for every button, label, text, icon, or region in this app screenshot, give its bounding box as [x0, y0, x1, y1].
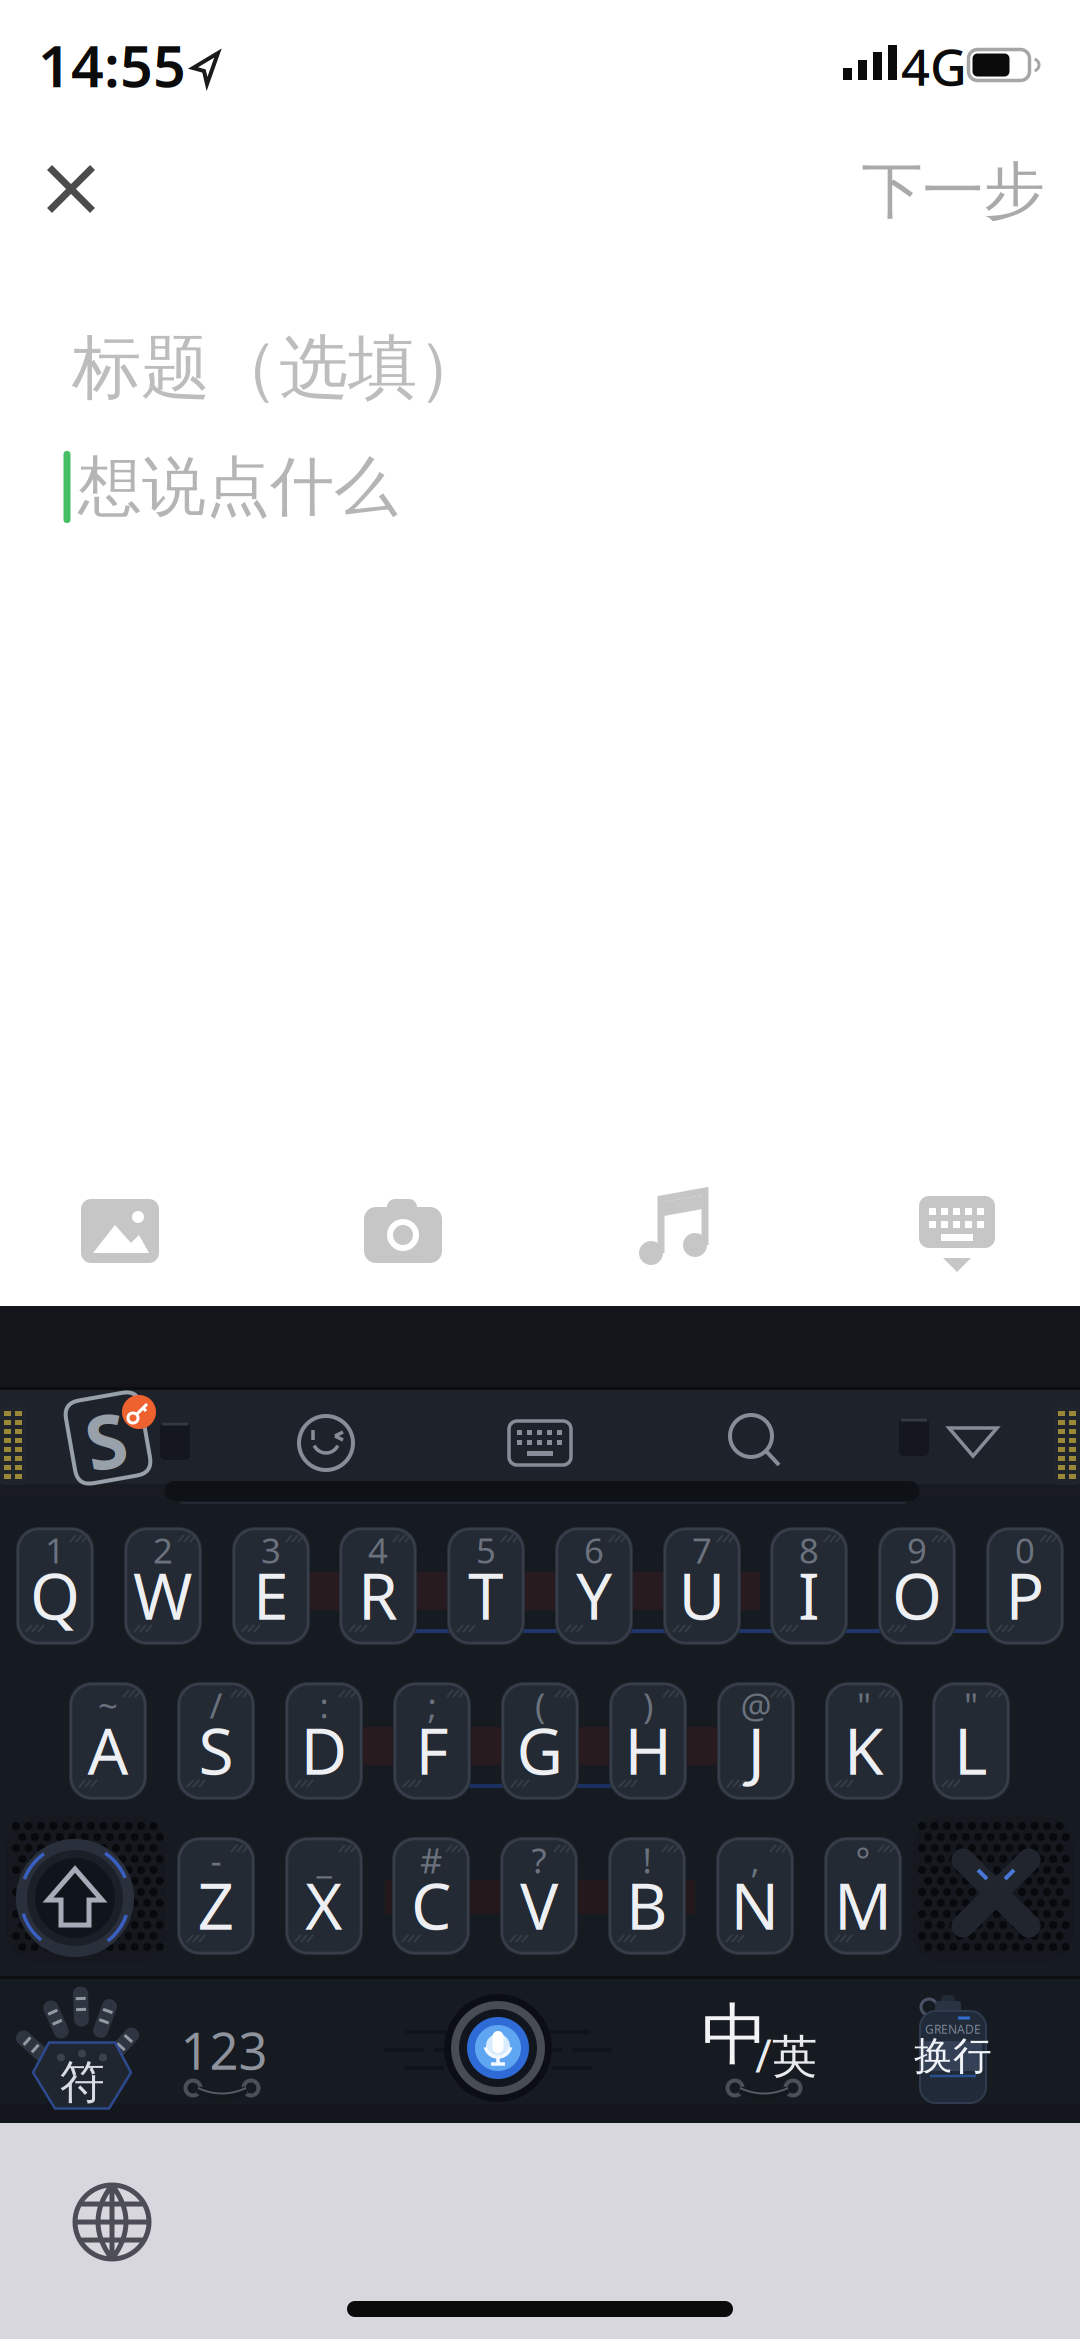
button[interactable]: Symbols [3, 1975, 153, 2120]
button[interactable]: ! [608, 1837, 686, 1955]
staticText: ) [643, 1682, 653, 1728]
staticText: ? [531, 1837, 546, 1883]
staticText: : [319, 1682, 328, 1728]
button[interactable]: " [932, 1682, 1010, 1800]
staticText: ( [535, 1682, 545, 1728]
button[interactable]: Chinese / English [710, 2010, 820, 2074]
button[interactable]: : [285, 1682, 363, 1800]
staticText: Z [197, 1862, 234, 1947]
staticText: B [626, 1862, 668, 1947]
staticText: , [750, 1837, 759, 1883]
button[interactable]: 1 [16, 1527, 94, 1645]
button[interactable]: , [716, 1837, 794, 1955]
button[interactable]: _ [285, 1837, 363, 1955]
button[interactable]: Delete [926, 1823, 1066, 1963]
staticText: 标题（选填） [72, 325, 486, 411]
button[interactable]: Music [637, 1191, 709, 1267]
staticText: 5 [476, 1527, 496, 1573]
button[interactable]: Sogou [65, 1393, 151, 1483]
button[interactable]: # [392, 1837, 470, 1955]
staticText: 3 [261, 1527, 281, 1573]
staticText: 14:55 [38, 27, 186, 103]
button[interactable]: 8 [770, 1527, 848, 1645]
staticText: 9 [907, 1527, 927, 1573]
button[interactable]: 4 [339, 1527, 417, 1645]
button[interactable]: 9 [878, 1527, 956, 1645]
button[interactable]: - [177, 1837, 255, 1955]
staticText: A [87, 1707, 128, 1792]
button[interactable]: ; [393, 1682, 471, 1800]
staticText: 0 [1015, 1527, 1035, 1573]
button[interactable]: Search [725, 1412, 783, 1470]
staticText: O [892, 1552, 942, 1637]
staticText: 123 [180, 2016, 267, 2084]
staticText: 符 [59, 2055, 104, 2110]
staticText: 4 [368, 1527, 388, 1573]
staticText: S [85, 1390, 126, 1490]
button[interactable]: ( [501, 1682, 579, 1800]
button[interactable]: 7 [663, 1527, 741, 1645]
staticText: @ [740, 1682, 771, 1728]
staticText: J [747, 1707, 764, 1792]
staticText: F [415, 1707, 448, 1792]
staticText: L [954, 1707, 988, 1792]
button[interactable]: Return [914, 1993, 994, 2105]
staticText: 想说点什么 [78, 448, 398, 526]
button[interactable]: Emoji [297, 1414, 355, 1472]
button[interactable]: 5 [447, 1527, 525, 1645]
staticText: S [198, 1707, 233, 1792]
button[interactable]: ) [609, 1682, 687, 1800]
staticText: D [300, 1707, 347, 1792]
button[interactable]: 0 [986, 1527, 1064, 1645]
button[interactable]: / [177, 1682, 255, 1800]
staticText: Y [576, 1552, 612, 1637]
staticText: # [420, 1837, 442, 1883]
staticText: K [844, 1707, 884, 1792]
staticText: U [678, 1552, 725, 1637]
staticText: W [133, 1552, 193, 1637]
button[interactable]: Next keyboard [70, 2180, 154, 2264]
button[interactable]: " [825, 1682, 903, 1800]
staticText: 中 [701, 1994, 768, 2076]
button[interactable]: 3 [232, 1527, 310, 1645]
button[interactable]: Voice input [442, 1992, 554, 2104]
staticText: I [798, 1552, 820, 1637]
staticText: " [964, 1682, 978, 1728]
staticText: 8 [799, 1527, 819, 1573]
staticText: Q [30, 1552, 80, 1637]
staticText: V [520, 1862, 558, 1947]
button[interactable]: 下一步 [861, 153, 1044, 229]
staticText: 7 [692, 1527, 712, 1573]
staticText: P [1005, 1552, 1044, 1637]
staticText: - [210, 1837, 221, 1883]
button[interactable]: ° [824, 1837, 902, 1955]
staticText: ~ [98, 1682, 118, 1728]
staticText: N [730, 1862, 779, 1947]
button[interactable]: Hide keyboard [919, 1196, 995, 1272]
button[interactable]: Shift [16, 1839, 134, 1957]
staticText: 6 [584, 1527, 604, 1573]
staticText: E [253, 1552, 289, 1637]
button[interactable]: 6 [555, 1527, 633, 1645]
button[interactable]: Photo library [81, 1199, 159, 1263]
staticText: X [305, 1862, 343, 1947]
staticText: 2 [153, 1527, 173, 1573]
button[interactable]: Keyboard layout [509, 1421, 571, 1465]
button[interactable]: Camera [364, 1197, 442, 1263]
staticText: G [516, 1707, 563, 1792]
staticText: ; [427, 1682, 436, 1728]
staticText: " [857, 1682, 871, 1728]
staticText: R [358, 1552, 398, 1637]
staticText: ! [642, 1837, 651, 1883]
button[interactable]: ~ [69, 1682, 147, 1800]
staticText: M [834, 1862, 892, 1947]
button[interactable]: Close [45, 163, 96, 214]
button[interactable]: Collapse [946, 1425, 1000, 1459]
staticText: 换行 [914, 2032, 992, 2080]
button[interactable]: 2 [124, 1527, 202, 1645]
button[interactable]: Numbers [180, 2016, 267, 2084]
staticText: GRENADE [925, 2021, 981, 2037]
button[interactable]: ? [500, 1837, 578, 1955]
button[interactable]: @ [717, 1682, 795, 1800]
staticText: H [624, 1707, 671, 1792]
